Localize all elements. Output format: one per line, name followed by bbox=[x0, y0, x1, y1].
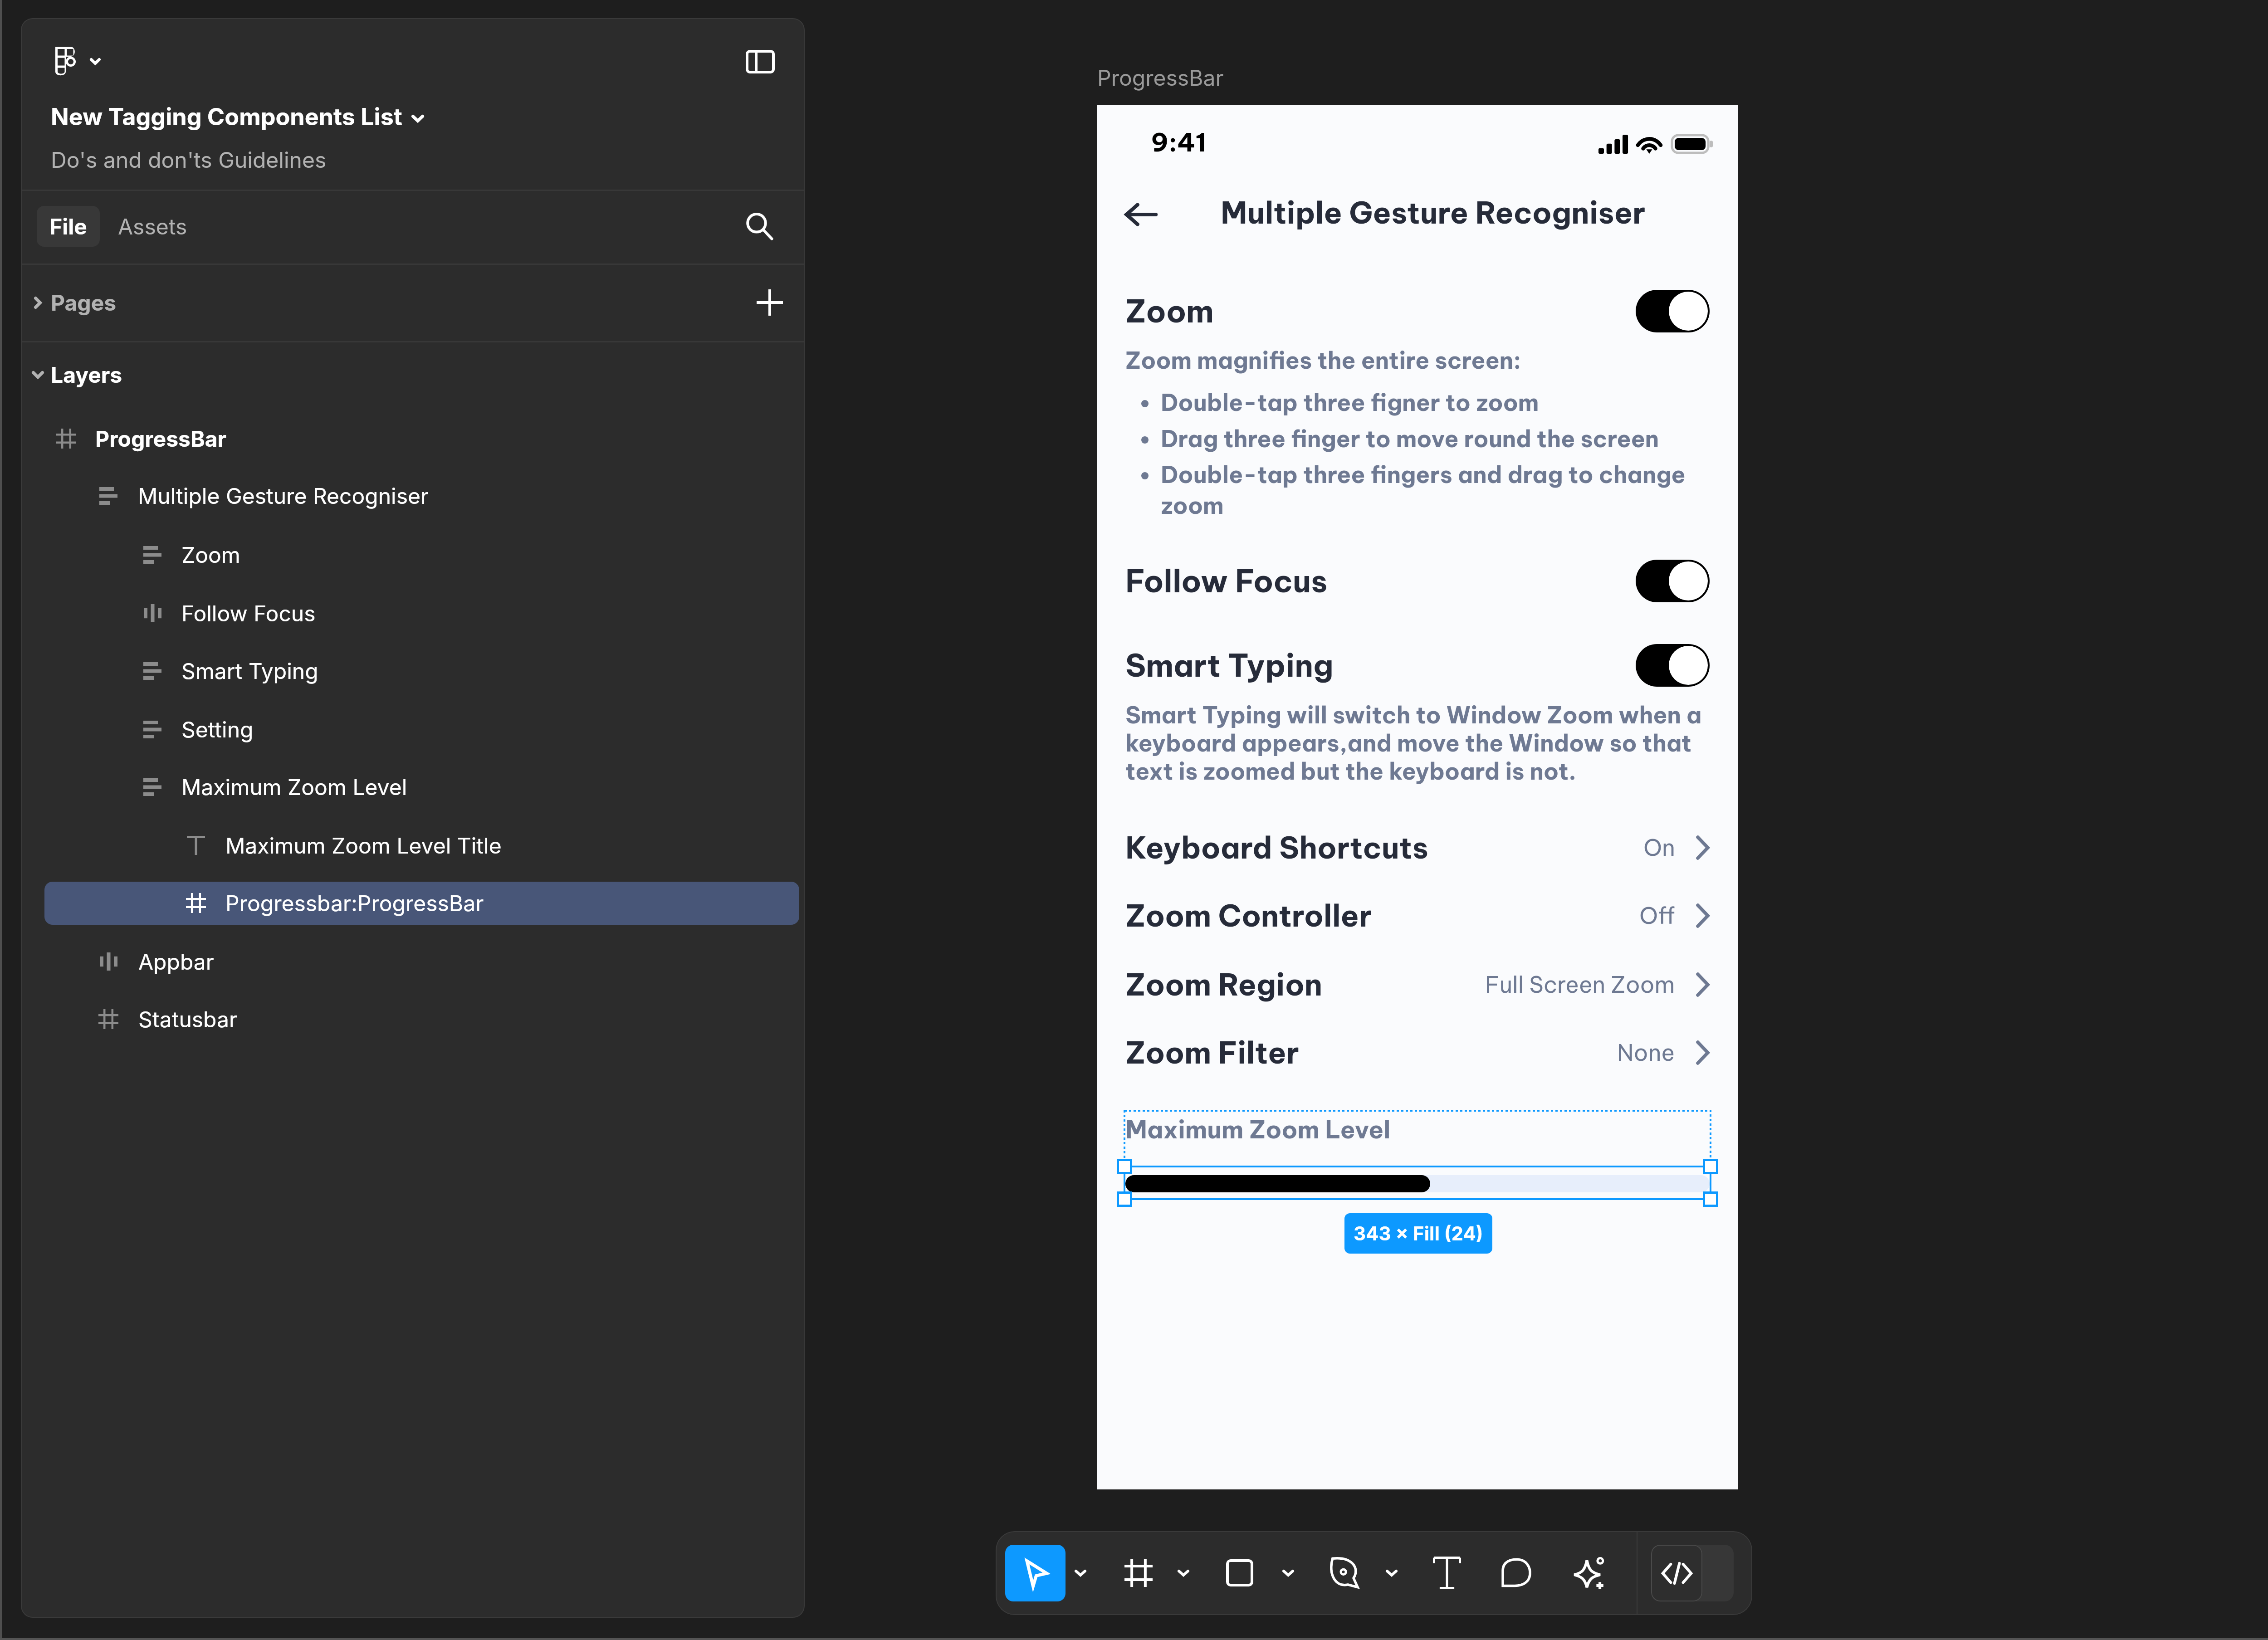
staticText: Maximum Zoom Level bbox=[181, 774, 407, 800]
button[interactable]: Add comment bbox=[1491, 1548, 1541, 1598]
button[interactable]: Dev mode bbox=[1651, 1545, 1702, 1601]
button[interactable]: Back bbox=[1118, 192, 1163, 237]
button[interactable]: Toggle bbox=[1636, 644, 1710, 687]
staticText: Progressbar:ProgressBar bbox=[225, 890, 484, 916]
button[interactable]: Figma main menu bbox=[43, 36, 129, 86]
staticText: Double-tap three fingers and drag to cha… bbox=[1161, 460, 1724, 520]
staticText: Zoom bbox=[181, 542, 240, 568]
button[interactable]: Smart Typing bbox=[21, 642, 805, 700]
button[interactable]: Appbar bbox=[21, 932, 805, 991]
staticText: 343 × Fill (24) bbox=[1354, 1222, 1483, 1245]
button[interactable]: Frame tool bbox=[1114, 1548, 1163, 1598]
staticText: Multiple Gesture Recogniser bbox=[1221, 194, 1646, 231]
button[interactable]: ProgressBar bbox=[21, 410, 805, 468]
staticText: ProgressBar bbox=[95, 425, 227, 452]
button[interactable]: Follow Focus bbox=[21, 584, 805, 642]
button[interactable]: Zoom Filter bbox=[1097, 1018, 1738, 1086]
button[interactable]: Shape tool options bbox=[1271, 1548, 1305, 1598]
button[interactable]: Pen tool options bbox=[1375, 1548, 1408, 1598]
staticText: Pages bbox=[51, 289, 117, 316]
button[interactable]: Follow Focus bbox=[1097, 552, 1738, 610]
staticText: None bbox=[1617, 1038, 1675, 1067]
button[interactable]: Actions bbox=[1564, 1548, 1614, 1598]
button[interactable]: Zoom Controller bbox=[1097, 881, 1738, 949]
button[interactable]: Pen tool bbox=[1319, 1548, 1369, 1598]
button[interactable]: Setting bbox=[21, 700, 805, 758]
button[interactable]: Keyboard Shortcuts bbox=[1097, 813, 1738, 881]
button[interactable]: Zoom Region bbox=[1097, 950, 1738, 1018]
staticText: Drag three finger to move round the scre… bbox=[1161, 424, 1659, 454]
staticText: Assets bbox=[118, 213, 187, 239]
staticText: Zoom bbox=[1125, 292, 1214, 331]
button[interactable]: Toggle bbox=[1636, 560, 1710, 602]
staticText: Do's and don'ts Guidelines bbox=[51, 146, 327, 173]
staticText: Layers bbox=[51, 361, 122, 388]
staticText: Setting bbox=[181, 716, 254, 742]
button[interactable]: Assets bbox=[112, 206, 193, 247]
staticText: Full Screen Zoom bbox=[1485, 970, 1675, 999]
button[interactable]: File options bbox=[406, 106, 429, 131]
staticText: Multiple Gesture Recogniser bbox=[138, 483, 429, 509]
button[interactable]: Move tool bbox=[1005, 1545, 1066, 1601]
staticText: 9:41 bbox=[1151, 126, 1207, 158]
button[interactable]: Frame tool options bbox=[1167, 1548, 1200, 1598]
staticText: Statusbar bbox=[138, 1006, 237, 1032]
staticText: New Tagging Components List bbox=[51, 102, 402, 131]
button[interactable] bbox=[44, 882, 799, 925]
staticText: Smart Typing bbox=[181, 658, 318, 684]
staticText: Smart Typing will switch to Window Zoom … bbox=[1125, 700, 1721, 786]
staticText: ProgressBar bbox=[1097, 64, 1224, 91]
button[interactable]: Statusbar bbox=[21, 990, 805, 1048]
button[interactable]: Text tool bbox=[1422, 1548, 1472, 1598]
button[interactable]: File bbox=[37, 206, 100, 247]
staticText: Zoom Filter bbox=[1125, 1034, 1299, 1071]
staticText: Keyboard Shortcuts bbox=[1125, 829, 1428, 866]
staticText: Follow Focus bbox=[1125, 561, 1328, 600]
staticText: Appbar bbox=[138, 948, 214, 975]
button[interactable]: Layers bbox=[21, 346, 805, 404]
staticText: Follow Focus bbox=[181, 600, 316, 626]
button[interactable]: Zoom bbox=[1097, 282, 1738, 340]
staticText: Off bbox=[1639, 901, 1675, 930]
button[interactable] bbox=[1125, 1175, 1710, 1192]
button[interactable]: Maximum Zoom Level Title bbox=[21, 816, 805, 874]
button[interactable]: Maximum Zoom Level bbox=[21, 758, 805, 816]
staticText: Zoom magnifies the entire screen: bbox=[1125, 346, 1521, 375]
button[interactable]: Zoom bbox=[21, 526, 805, 584]
staticText: Zoom Region bbox=[1125, 966, 1323, 1003]
staticText: Smart Typing bbox=[1125, 646, 1334, 685]
button[interactable]: Toggle UI panels bbox=[735, 37, 785, 87]
button[interactable]: Toggle bbox=[1636, 290, 1710, 332]
button[interactable]: Move tool options bbox=[1064, 1548, 1097, 1598]
button[interactable]: Multiple Gesture Recogniser bbox=[21, 467, 805, 525]
button[interactable]: Add page bbox=[748, 281, 791, 324]
button[interactable]: Smart Typing bbox=[1097, 636, 1738, 694]
staticText: File bbox=[49, 213, 87, 239]
staticText: Maximum Zoom Level Title bbox=[225, 832, 502, 859]
button[interactable]: Shape tool bbox=[1215, 1548, 1265, 1598]
button[interactable]: Pages bbox=[21, 264, 805, 341]
staticText: Double-tap three figner to zoom bbox=[1161, 388, 1539, 417]
button[interactable]: Search bbox=[737, 204, 782, 249]
staticText: On bbox=[1643, 833, 1675, 862]
staticText: Zoom Controller bbox=[1125, 897, 1372, 934]
staticText: Maximum Zoom Level bbox=[1125, 1114, 1391, 1145]
